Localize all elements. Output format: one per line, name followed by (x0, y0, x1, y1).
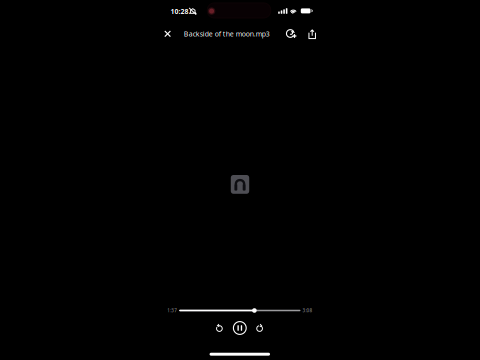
staticText: 1:37 (167, 307, 177, 313)
button[interactable]: Close (157, 23, 179, 45)
button[interactable]: Add to playlist (280, 23, 302, 45)
button[interactable]: Share (301, 23, 323, 45)
staticText: 10:28 (170, 6, 188, 16)
staticText: 3:08 (303, 307, 313, 313)
button[interactable]: Skip forward 15 seconds (250, 318, 270, 338)
staticText: Backside of the moon.mp3 (184, 29, 270, 39)
button[interactable]: Pause (230, 318, 250, 338)
button[interactable]: Skip back 15 seconds (210, 318, 230, 338)
